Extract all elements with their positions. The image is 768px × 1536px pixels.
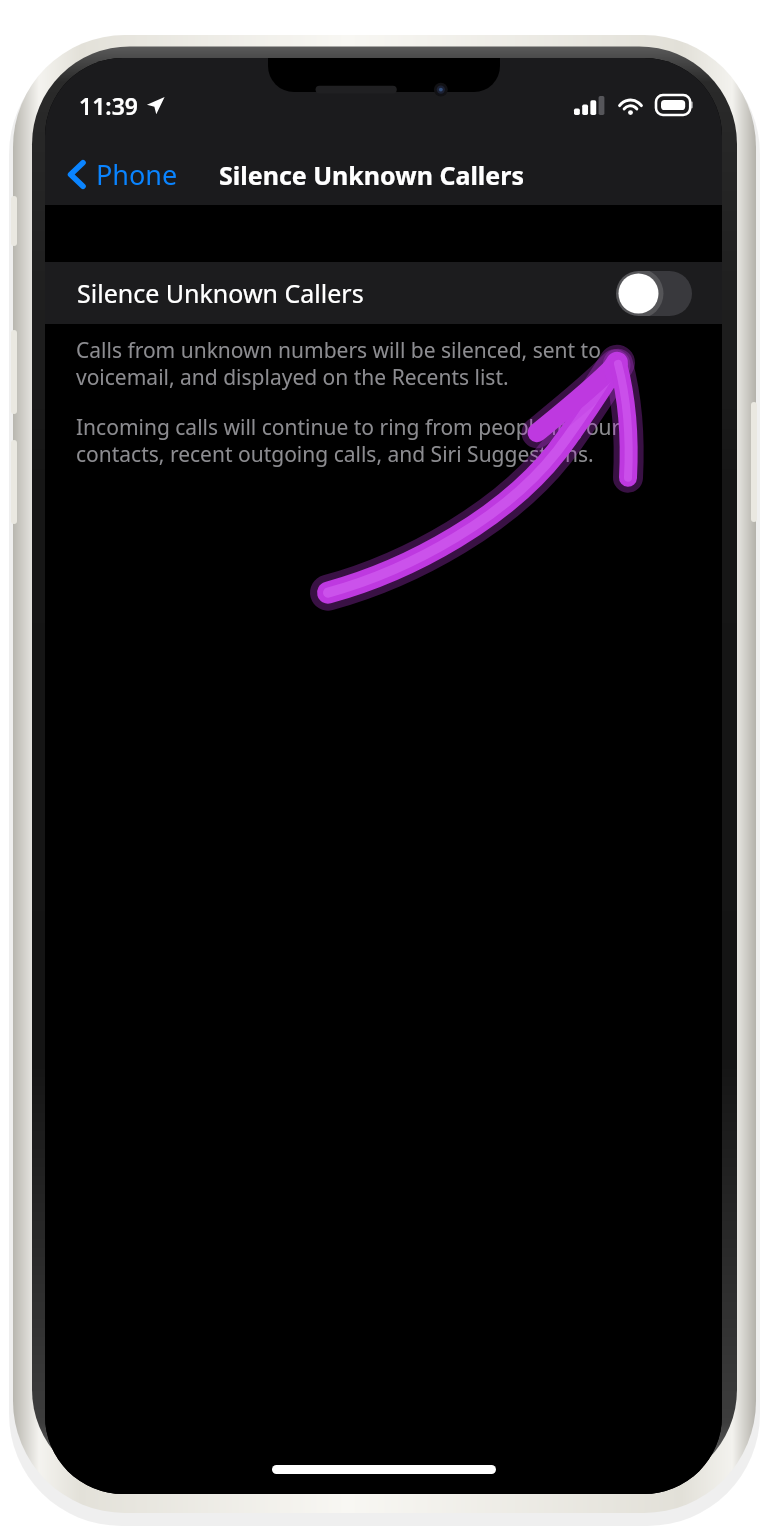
staticText: 11:39	[79, 90, 138, 121]
button[interactable]: Phone	[45, 150, 190, 199]
staticText: Silence Unknown Callers	[77, 276, 364, 310]
button[interactable]: Silence Unknown Callers, off	[616, 271, 692, 316]
button[interactable]: Silence Unknown Callers	[45, 262, 722, 324]
staticText: Silence Unknown Callers	[219, 158, 524, 192]
staticText: Phone	[96, 156, 178, 193]
staticText: Incoming calls will continue to ring fro…	[76, 413, 692, 468]
staticText: Calls from unknown numbers will be silen…	[76, 336, 692, 391]
